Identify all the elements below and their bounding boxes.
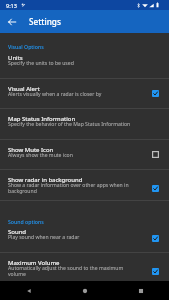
button[interactable]: Units (0, 47, 169, 78)
staticText: Sound (8, 228, 27, 236)
button[interactable]: Navigate up (1, 11, 23, 33)
staticText: 9:13 (6, 2, 17, 9)
staticText: background (8, 188, 37, 195)
staticText: Show radar in background (8, 176, 83, 184)
button[interactable]: Toggle (149, 87, 161, 99)
staticText: Show Mute Icon (8, 146, 54, 154)
staticText: Play sound when near a radar (8, 234, 80, 241)
button[interactable]: Toggle (149, 265, 161, 277)
staticText: Specify the behavior of the Map Status I… (8, 121, 131, 128)
staticText: Show a radar information over other apps… (8, 182, 129, 189)
staticText: Specify the units to be used (8, 60, 74, 67)
staticText: Map Status Information (8, 115, 76, 123)
staticText: Alerts visually when a radar is closer b… (8, 91, 102, 98)
staticText: Always show the mute icon (8, 152, 73, 159)
button[interactable]: Visual Options (0, 33, 169, 49)
button[interactable]: Show Mute Icon (0, 139, 169, 169)
button[interactable]: Sound (0, 222, 169, 252)
button[interactable]: Toggle (149, 148, 161, 160)
staticText: Sound options (8, 218, 44, 225)
button[interactable]: Map Status Information (0, 108, 169, 139)
button[interactable]: Maximum Volume (0, 252, 169, 281)
button[interactable]: Visual Alert (0, 78, 169, 108)
button[interactable]: Home (57, 281, 113, 300)
button[interactable]: Back (0, 281, 57, 300)
button[interactable]: Recent apps (113, 281, 169, 300)
staticText: Visual Alert (8, 85, 40, 93)
staticText: Settings (29, 16, 61, 27)
staticText: Automatically adjust the sound to the ma… (8, 265, 124, 272)
button[interactable]: Show radar in background (0, 169, 169, 200)
button[interactable]: Toggle (149, 182, 161, 194)
staticText: Visual Options (8, 43, 44, 50)
staticText: Maximum Volume (8, 259, 60, 267)
button[interactable]: Toggle (149, 232, 161, 244)
staticText: volume (8, 271, 26, 278)
button[interactable]: Sound options (0, 208, 169, 224)
staticText: Units (8, 54, 23, 62)
